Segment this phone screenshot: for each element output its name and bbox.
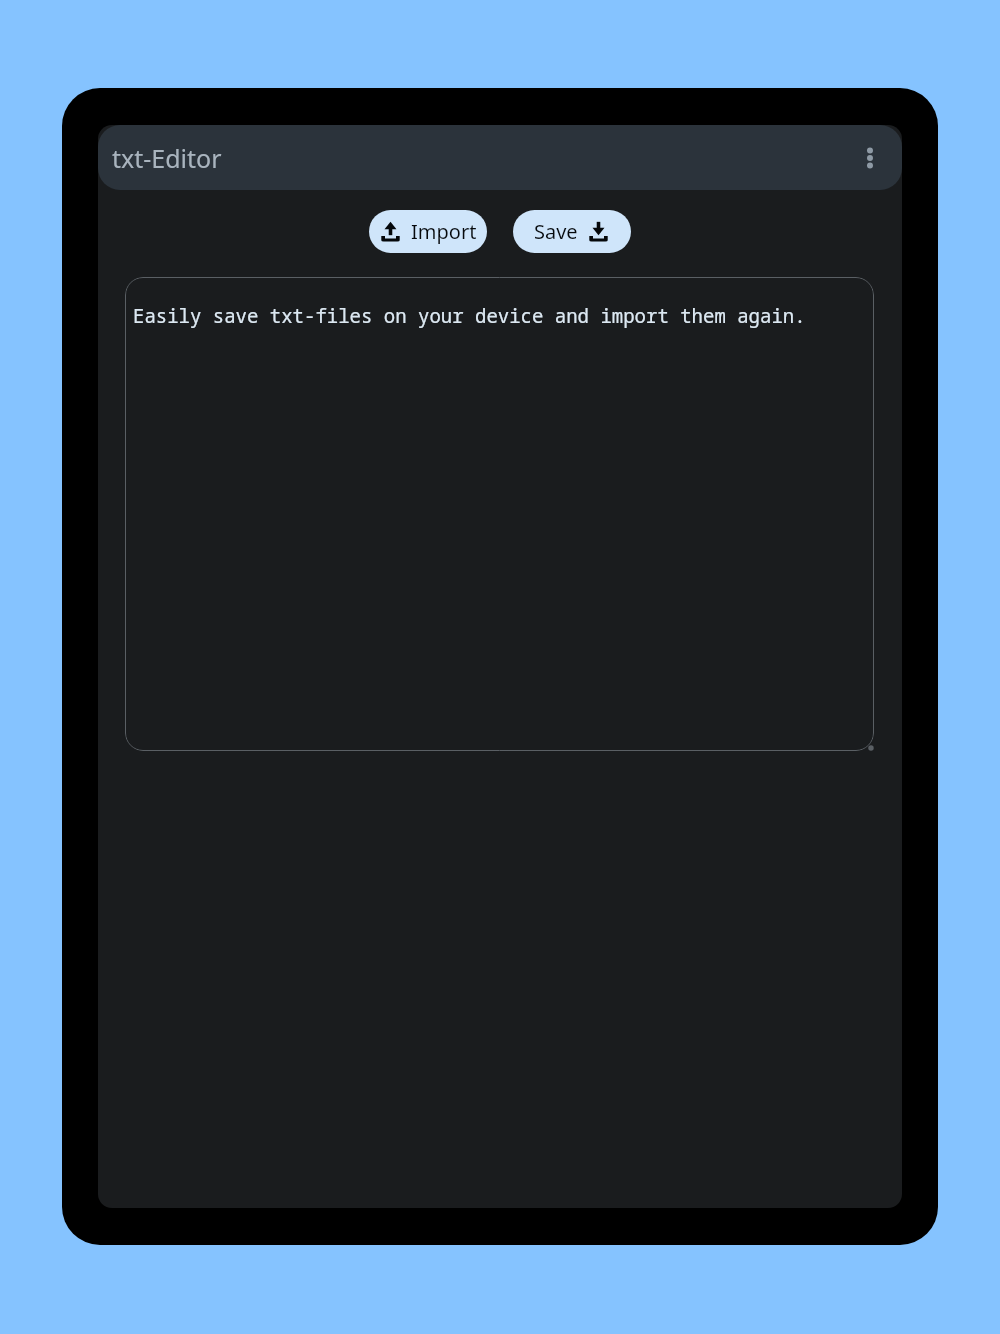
staticText: txt-Editor bbox=[112, 141, 222, 175]
button[interactable]: Easily save txt-files on your device and… bbox=[125, 277, 874, 751]
button[interactable]: Import bbox=[369, 210, 487, 253]
button[interactable]: Save bbox=[513, 210, 631, 253]
staticText: Save bbox=[534, 218, 578, 245]
button[interactable]: More options bbox=[846, 134, 894, 182]
staticText: Easily save txt-files on your device and… bbox=[133, 303, 806, 329]
staticText: Import bbox=[411, 218, 477, 245]
